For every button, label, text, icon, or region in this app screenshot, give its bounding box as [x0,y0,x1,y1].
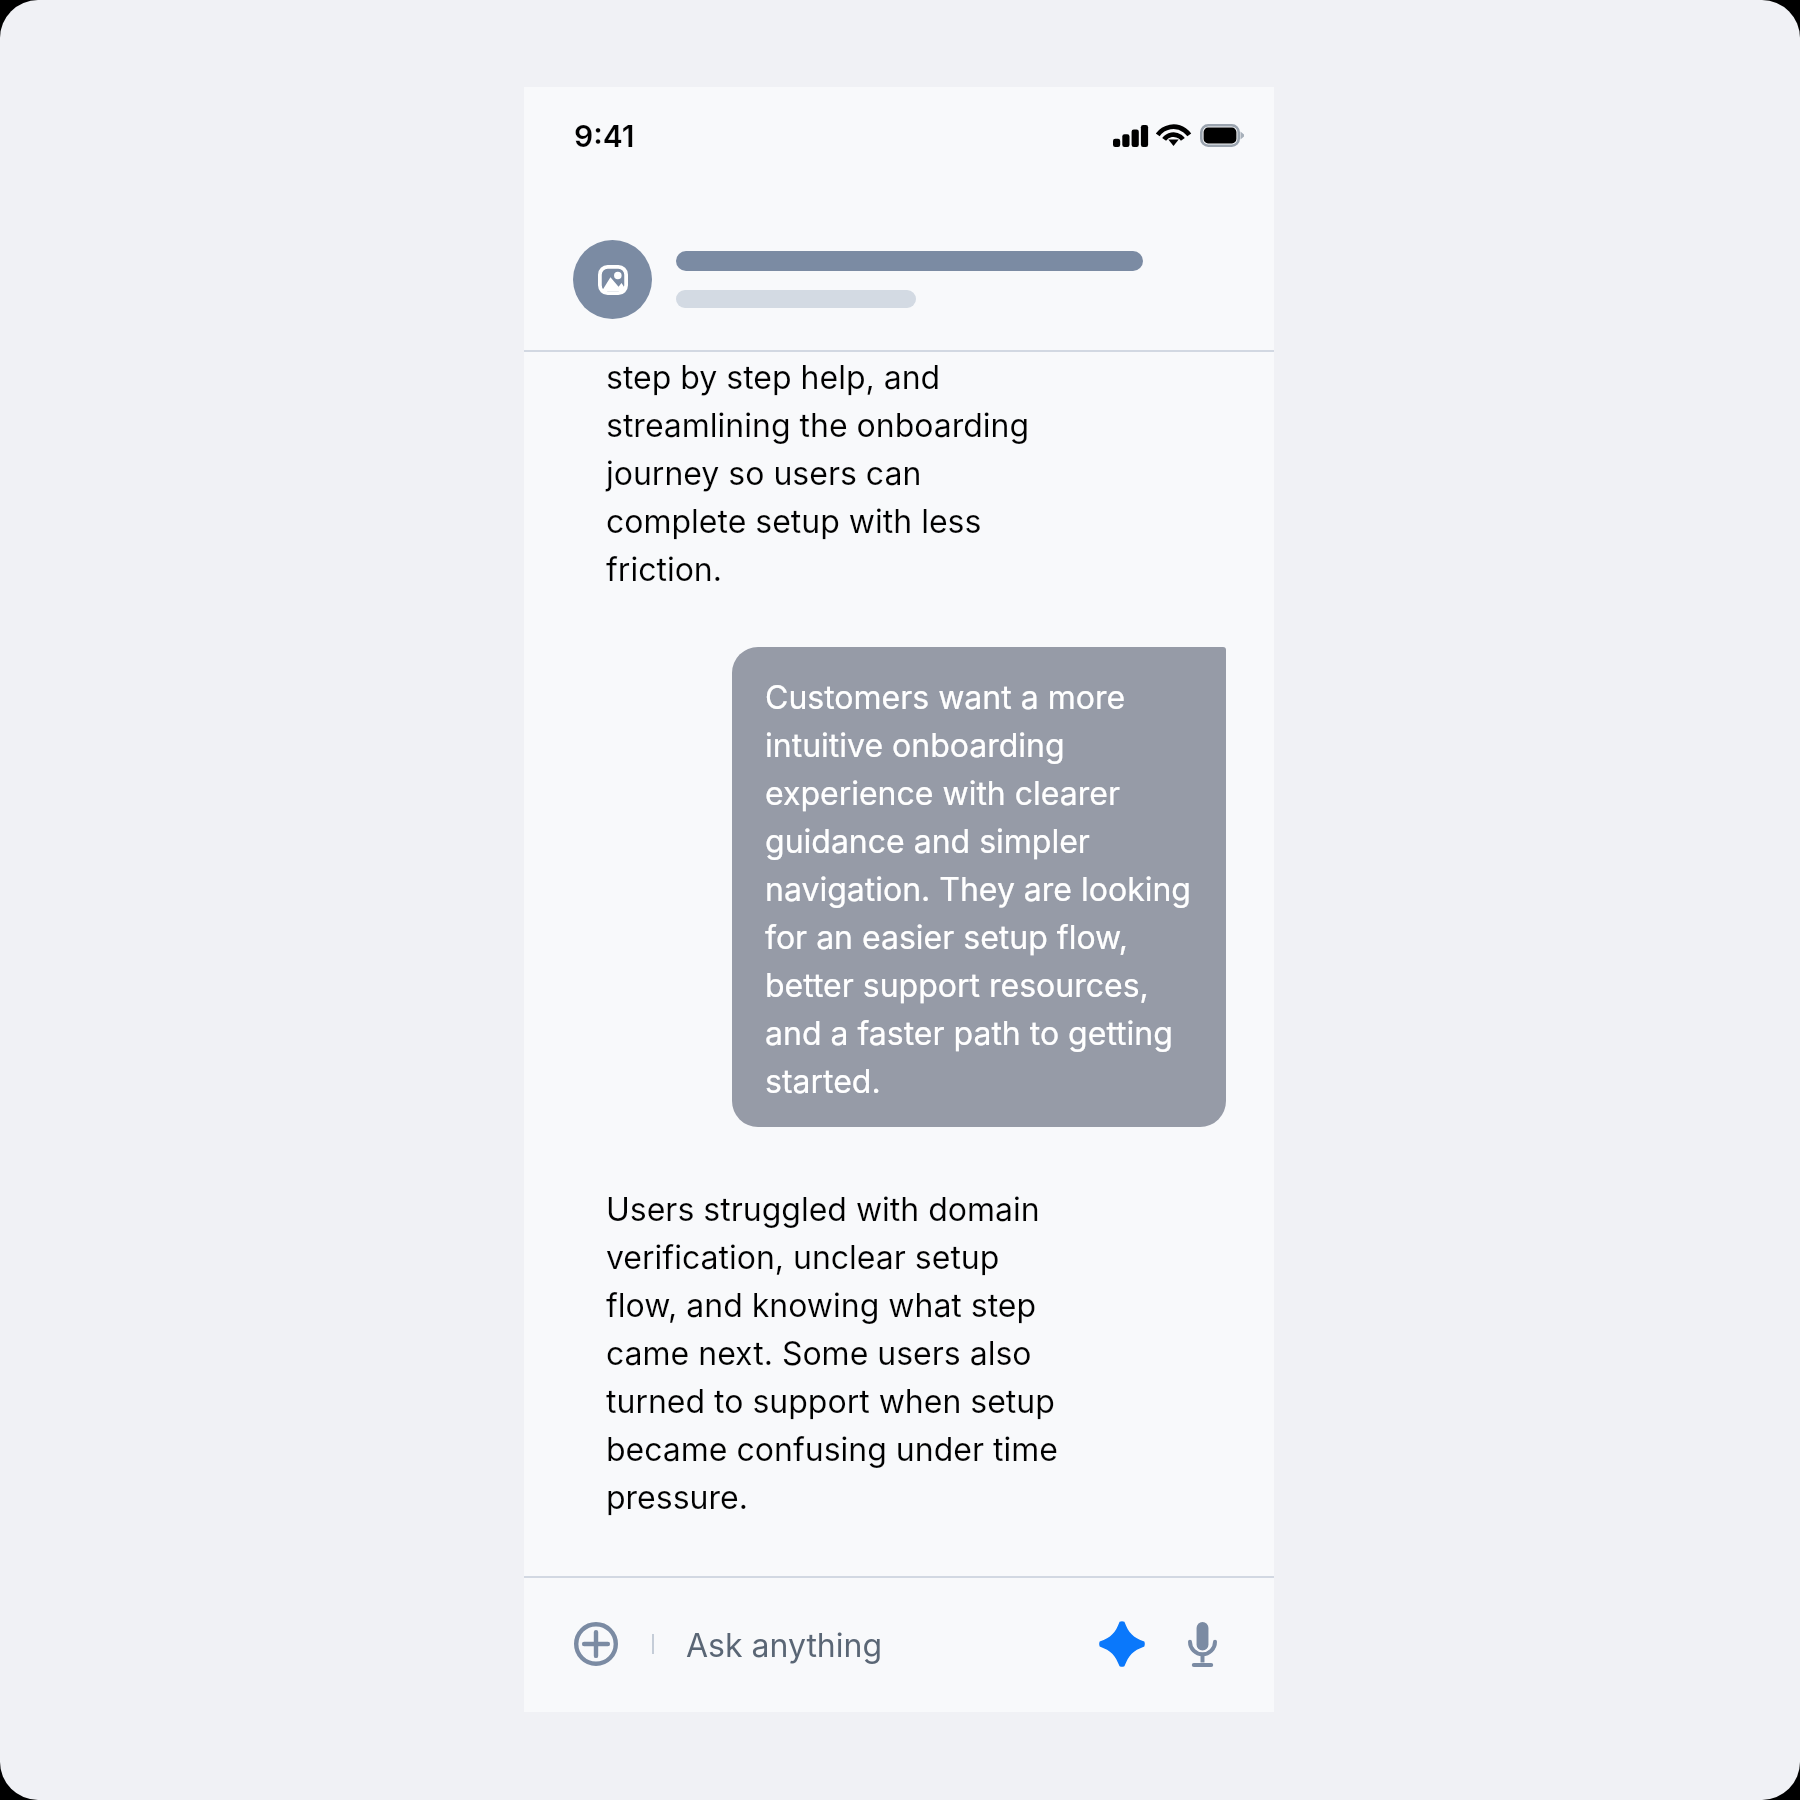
staticText: Users struggled with domain verification… [606,1183,1066,1519]
button[interactable]: Conversation details [524,180,1274,350]
button[interactable]: Ask anything [668,1607,1074,1681]
staticText: Customers want a more intuitive onboardi… [765,671,1193,1103]
staticText: step by step help, and streamlining the … [606,351,1066,591]
button[interactable]: step by step help, and streamlining the … [606,351,1066,591]
button[interactable]: Voice input [1176,1618,1228,1670]
staticText: Ask anything [686,1626,883,1665]
button[interactable]: Add attachment [570,1618,622,1670]
staticText: 9:41 [574,118,635,154]
button[interactable]: Customers want a more intuitive onboardi… [732,647,1226,1127]
button[interactable]: Users struggled with domain verification… [606,1183,1066,1519]
button[interactable]: AI suggestions [1096,1618,1148,1670]
